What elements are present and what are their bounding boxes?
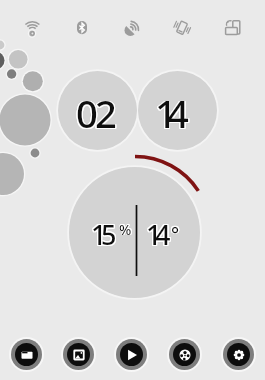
staticText: ° xyxy=(170,220,179,246)
staticText: 4 xyxy=(156,216,172,253)
staticText: 5 xyxy=(100,217,116,254)
staticText: 2 xyxy=(96,87,118,139)
staticText: ° xyxy=(171,221,180,247)
staticText: 4 xyxy=(166,87,188,139)
staticText: 1 xyxy=(92,215,108,252)
staticText: 1 xyxy=(91,215,107,252)
staticText: 1 xyxy=(155,87,177,139)
staticText: 1 xyxy=(146,216,162,253)
staticText: 4 xyxy=(155,215,171,252)
button[interactable]: Minutes xyxy=(138,71,217,150)
staticText: % xyxy=(120,219,133,239)
staticText: 1 xyxy=(147,215,163,252)
staticText: 4 xyxy=(167,88,189,140)
staticText: 2 xyxy=(94,88,116,140)
staticText: ° xyxy=(170,221,179,247)
button[interactable]: Humidity and temperature xyxy=(69,167,200,298)
staticText: 5 xyxy=(102,216,118,253)
staticText: 0 xyxy=(77,87,99,139)
button[interactable]: Gallery xyxy=(63,339,94,370)
staticText: 5 xyxy=(101,215,117,252)
staticText: ° xyxy=(171,221,180,247)
staticText: ° xyxy=(172,221,181,247)
staticText: 4 xyxy=(155,216,171,253)
staticText: 4 xyxy=(156,215,172,252)
staticText: 1 xyxy=(155,88,177,140)
staticText: 1 xyxy=(147,217,163,254)
button[interactable]: Play xyxy=(116,339,147,370)
staticText: 4 xyxy=(166,88,188,140)
staticText: % xyxy=(119,219,132,239)
staticText: 1 xyxy=(155,87,177,139)
button[interactable]: Sports xyxy=(169,339,200,370)
staticText: 1 xyxy=(154,87,176,139)
staticText: 0 xyxy=(77,87,99,139)
staticText: 4 xyxy=(168,87,190,139)
staticText: 1 xyxy=(145,215,161,252)
staticText: 2 xyxy=(95,87,117,139)
staticText: ° xyxy=(170,221,179,247)
staticText: % xyxy=(119,219,132,239)
staticText: ° xyxy=(172,220,181,246)
staticText: 1 xyxy=(91,216,107,253)
button[interactable]: Settings xyxy=(223,339,254,370)
staticText: 2 xyxy=(96,88,118,140)
staticText: 1 xyxy=(90,217,106,254)
staticText: 1 xyxy=(92,217,108,254)
staticText: 0 xyxy=(76,87,98,139)
staticText: % xyxy=(119,218,132,238)
staticText: 0 xyxy=(76,87,98,139)
staticText: 4 xyxy=(154,216,170,253)
staticText: % xyxy=(120,219,133,239)
button[interactable]: Hours xyxy=(58,71,137,150)
staticText: 5 xyxy=(102,217,118,254)
staticText: 1 xyxy=(146,217,162,254)
staticText: 1 xyxy=(146,215,162,252)
staticText: 1 xyxy=(145,216,161,253)
staticText: 4 xyxy=(155,217,171,254)
staticText: 1 xyxy=(90,215,106,252)
staticText: 1 xyxy=(92,216,108,253)
staticText: 2 xyxy=(95,88,117,140)
staticText: 5 xyxy=(102,215,118,252)
staticText: ° xyxy=(172,221,181,247)
staticText: 1 xyxy=(90,216,106,253)
staticText: 5 xyxy=(101,217,117,254)
staticText: 1 xyxy=(154,87,176,139)
staticText: 4 xyxy=(167,87,189,139)
staticText: 4 xyxy=(154,215,170,252)
staticText: ° xyxy=(171,220,180,246)
staticText: 0 xyxy=(76,88,98,140)
staticText: 2 xyxy=(94,87,116,139)
staticText: 2 xyxy=(96,87,118,139)
staticText: % xyxy=(119,219,132,239)
staticText: 1 xyxy=(91,217,107,254)
staticText: 4 xyxy=(168,87,190,139)
staticText: 0 xyxy=(75,87,97,139)
staticText: 4 xyxy=(168,88,190,140)
staticText: % xyxy=(119,218,132,238)
staticText: 0 xyxy=(77,88,99,140)
staticText: 5 xyxy=(101,216,117,253)
staticText: 1 xyxy=(154,88,176,140)
staticText: 2 xyxy=(94,87,116,139)
staticText: 0 xyxy=(75,88,97,140)
staticText: 0 xyxy=(75,87,97,139)
staticText: % xyxy=(119,219,132,239)
staticText: 1 xyxy=(155,87,177,139)
staticText: 4 xyxy=(167,87,189,139)
staticText: 4 xyxy=(166,87,188,139)
staticText: 1 xyxy=(145,217,161,254)
button[interactable]: Apps xyxy=(11,339,42,370)
staticText: 1 xyxy=(155,88,177,140)
staticText: 5 xyxy=(100,215,116,252)
staticText: 4 xyxy=(154,217,170,254)
staticText: % xyxy=(120,218,133,238)
staticText: 2 xyxy=(95,87,117,139)
staticText: 4 xyxy=(156,217,172,254)
staticText: 1 xyxy=(155,87,177,139)
staticText: 1 xyxy=(147,216,163,253)
staticText: 5 xyxy=(100,216,116,253)
